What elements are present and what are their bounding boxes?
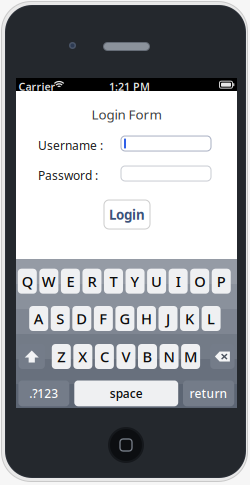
- staticText: space: [110, 385, 143, 401]
- button[interactable]: L: [202, 306, 221, 331]
- button[interactable]: B: [138, 344, 157, 369]
- button[interactable]: K: [180, 306, 199, 331]
- button[interactable]: W: [39, 269, 58, 294]
- button[interactable]: D: [72, 306, 91, 331]
- staticText: P: [217, 271, 226, 291]
- staticText: L: [207, 309, 215, 328]
- button[interactable]: N: [160, 344, 179, 369]
- button[interactable]: T: [104, 269, 123, 294]
- button[interactable]: space: [74, 380, 178, 406]
- staticText: U: [151, 271, 162, 291]
- staticText: return: [190, 385, 228, 401]
- button[interactable]: S: [51, 306, 70, 331]
- button[interactable]: V: [116, 344, 135, 369]
- button[interactable]: M: [181, 344, 200, 369]
- button[interactable]: J: [158, 306, 177, 331]
- staticText: Login Form: [91, 105, 161, 123]
- button[interactable]: G: [115, 306, 134, 331]
- staticText: Carrier: [18, 80, 55, 94]
- staticText: D: [76, 309, 87, 328]
- button[interactable]: A: [29, 306, 48, 331]
- staticText: J: [166, 309, 170, 328]
- staticText: W: [42, 271, 56, 291]
- button[interactable]: O: [190, 269, 209, 294]
- button[interactable]: Y: [125, 269, 144, 294]
- button[interactable]: Shift: [19, 344, 45, 369]
- button[interactable]: return: [183, 380, 234, 406]
- staticText: .?123: [29, 385, 58, 401]
- button[interactable]: E: [61, 269, 80, 294]
- staticText: S: [56, 309, 64, 328]
- staticText: K: [185, 309, 194, 328]
- button[interactable]: R: [82, 269, 101, 294]
- staticText: B: [142, 347, 152, 366]
- staticText: N: [164, 347, 175, 366]
- button[interactable]: P: [212, 269, 231, 294]
- staticText: M: [184, 347, 197, 366]
- button[interactable]: F: [94, 306, 113, 331]
- button[interactable]: U: [147, 269, 166, 294]
- staticText: F: [99, 309, 107, 328]
- staticText: H: [141, 309, 152, 328]
- button[interactable]: .?123: [18, 380, 69, 406]
- staticText: T: [109, 271, 117, 291]
- button[interactable]: X: [73, 344, 92, 369]
- staticText: C: [100, 347, 109, 366]
- staticText: Z: [57, 347, 65, 366]
- button[interactable]: H: [137, 306, 156, 331]
- staticText: 1:21 PM: [109, 80, 150, 94]
- staticText: G: [119, 309, 130, 328]
- staticText: A: [34, 309, 44, 328]
- button[interactable]: C: [95, 344, 114, 369]
- staticText: Y: [131, 271, 140, 291]
- staticText: X: [78, 347, 87, 366]
- button[interactable]: Z: [52, 344, 71, 369]
- staticText: O: [194, 271, 205, 291]
- button[interactable]: I: [169, 269, 188, 294]
- staticText: Password :: [38, 167, 98, 183]
- button[interactable]: Delete: [210, 344, 234, 369]
- button[interactable]: Login: [104, 200, 150, 229]
- staticText: R: [87, 271, 96, 291]
- staticText: V: [121, 347, 130, 366]
- staticText: I: [176, 271, 181, 291]
- staticText: Q: [22, 271, 33, 291]
- staticText: Username :: [38, 137, 103, 153]
- staticText: Login: [109, 206, 145, 223]
- staticText: E: [66, 271, 74, 291]
- button[interactable]: Q: [18, 269, 37, 294]
